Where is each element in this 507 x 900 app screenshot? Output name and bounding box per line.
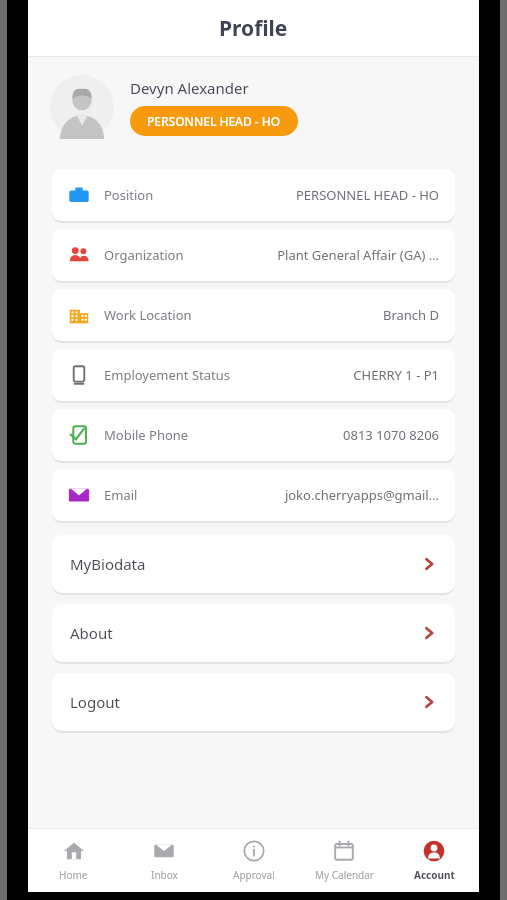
staticText: Account — [414, 868, 455, 882]
button[interactable]: Approval — [209, 829, 299, 892]
staticText: joko.cherryapps@gmail… — [284, 486, 439, 504]
staticText: CHERRY 1 - P1 — [353, 366, 439, 384]
staticText: Branch D — [382, 306, 439, 324]
staticText: Inbox — [151, 868, 178, 882]
staticText: Profile — [219, 14, 288, 43]
staticText: MyBiodata — [70, 554, 146, 574]
staticText: About — [70, 623, 113, 643]
staticText: Mobile Phone — [104, 426, 189, 444]
button[interactable]: Work Location — [52, 289, 455, 341]
staticText: Devyn Alexander — [130, 78, 249, 98]
button[interactable]: Employement Status — [52, 349, 455, 401]
button[interactable]: Email — [52, 469, 455, 521]
staticText: Plant General Affair (GA) … — [277, 246, 439, 264]
staticText: Employement Status — [104, 366, 230, 384]
staticText: Approval — [233, 868, 275, 882]
staticText: PERSONNEL HEAD - HO — [295, 186, 439, 204]
staticText: PERSONNEL HEAD - HO — [147, 113, 281, 129]
staticText: Logout — [70, 692, 120, 712]
staticText: Organization — [104, 246, 184, 264]
button[interactable]: My Calendar — [299, 829, 389, 892]
button[interactable]: PERSONNEL HEAD - HO — [130, 106, 298, 136]
button[interactable]: Account — [389, 829, 479, 892]
button[interactable]: Organization — [52, 229, 455, 281]
button[interactable]: About — [52, 604, 455, 662]
staticText: Work Location — [104, 306, 192, 324]
staticText: 0813 1070 8206 — [343, 426, 439, 444]
button[interactable]: Mobile Phone — [52, 409, 455, 461]
button[interactable]: Position — [52, 169, 455, 221]
button[interactable]: Logout — [52, 673, 455, 731]
staticText: Position — [104, 186, 154, 204]
staticText: Home — [59, 868, 88, 882]
button[interactable]: Home — [28, 829, 119, 892]
button[interactable]: MyBiodata — [52, 535, 455, 593]
button[interactable]: Inbox — [119, 829, 209, 892]
staticText: My Calendar — [315, 868, 374, 882]
staticText: Email — [104, 486, 138, 504]
